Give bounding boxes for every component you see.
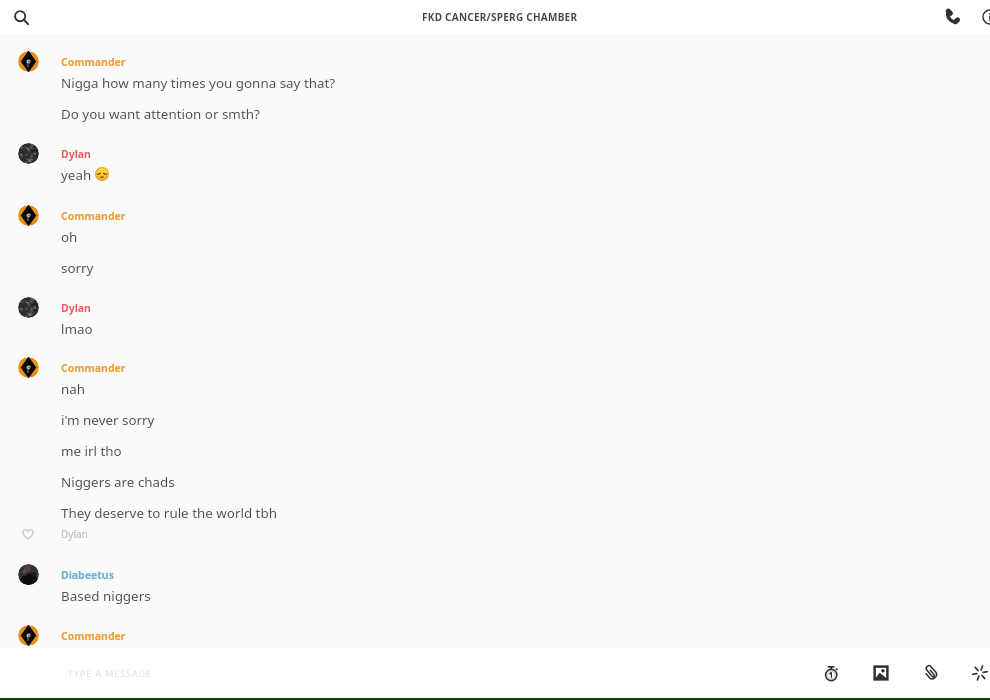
- staticText: Diabeetus: [61, 568, 114, 582]
- button[interactable]: Effects: [966, 659, 990, 687]
- button[interactable]: Avatar: [18, 205, 39, 226]
- staticText: Commander: [61, 361, 126, 375]
- staticText: Based niggers: [61, 587, 151, 605]
- button[interactable]: Niggers are chads: [0, 467, 990, 498]
- staticText: Dylan: [61, 147, 91, 161]
- button[interactable]: Call: [937, 1, 968, 32]
- button[interactable]: Do you want attention or smth?: [0, 99, 990, 130]
- button[interactable]: Avatar: [18, 51, 39, 72]
- button[interactable]: Diabeetus: [0, 563, 990, 582]
- button[interactable]: Commander: [0, 204, 990, 223]
- button[interactable]: Info: [975, 2, 990, 32]
- staticText: i'm never sorry: [61, 411, 155, 429]
- button[interactable]: oh: [0, 222, 990, 253]
- button[interactable]: Commander: [0, 356, 990, 375]
- button[interactable]: Commander: [0, 50, 990, 69]
- button[interactable]: Avatar: [18, 625, 39, 646]
- button[interactable]: i'm never sorry: [0, 405, 990, 436]
- button[interactable]: sorry: [0, 253, 990, 284]
- button[interactable]: Nigga how many times you gonna say that?: [0, 68, 990, 99]
- button[interactable]: Based niggers: [0, 581, 990, 612]
- button[interactable]: Photo: [867, 659, 895, 687]
- button[interactable]: Attach: [917, 659, 945, 687]
- staticText: FKD CANCER/SPERG CHAMBER: [422, 10, 578, 24]
- button[interactable]: Dylan: [0, 142, 990, 161]
- staticText: oh: [61, 228, 78, 246]
- button[interactable]: lmao: [0, 314, 990, 345]
- staticText: Dylan: [61, 527, 88, 541]
- button[interactable]: Timer: [818, 659, 846, 687]
- staticText: sorry: [61, 259, 94, 277]
- staticText: Commander: [61, 55, 126, 69]
- staticText: Commander: [61, 209, 126, 223]
- staticText: lmao: [61, 320, 93, 338]
- button[interactable]: Avatar: [18, 143, 39, 164]
- button[interactable]: Search: [6, 2, 36, 32]
- staticText: Commander: [61, 629, 126, 643]
- staticText: TYPE A MESSAGE: [68, 667, 152, 679]
- staticText: Dylan: [61, 301, 91, 315]
- button[interactable]: Avatar: [18, 357, 39, 378]
- button[interactable]: Commander: [0, 624, 990, 643]
- staticText: Nigga how many times you gonna say that?: [61, 74, 336, 92]
- staticText: Do you want attention or smth?: [61, 105, 260, 123]
- staticText: They deserve to rule the world tbh: [61, 504, 277, 522]
- staticText: me irl tho: [61, 442, 122, 460]
- button[interactable]: Like: [21, 527, 35, 541]
- staticText: yeah: [61, 166, 92, 184]
- button[interactable]: nah: [0, 374, 990, 405]
- staticText: nah: [61, 380, 86, 398]
- button[interactable]: yeah: [0, 160, 990, 191]
- button[interactable]: They deserve to rule the world tbh: [0, 498, 990, 529]
- staticText: Niggers are chads: [61, 473, 175, 491]
- button[interactable]: Avatar: [18, 297, 39, 318]
- button[interactable]: me irl tho: [0, 436, 990, 467]
- button[interactable]: Dylan: [0, 296, 990, 315]
- button[interactable]: Avatar: [18, 564, 39, 585]
